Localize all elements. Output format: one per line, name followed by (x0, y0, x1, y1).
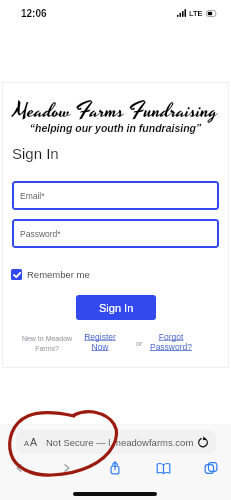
button[interactable]: Email* (12, 181, 219, 210)
staticText: 12:06 (21, 8, 47, 19)
staticText: Register Now (80, 332, 120, 352)
staticText: A (30, 436, 38, 448)
staticText: New to Meadow Farms? (16, 335, 78, 352)
button[interactable]: Back (6, 455, 32, 481)
staticText: Password* (20, 229, 61, 238)
button[interactable]: Forgot Password? (141, 332, 201, 352)
button[interactable]: Password* (12, 219, 219, 248)
staticText: A (24, 439, 30, 447)
button[interactable]: Bookmarks (150, 455, 176, 481)
button[interactable]: A (16, 430, 216, 454)
staticText: or (136, 340, 143, 348)
staticText: Meadow Farms Fundraising (2, 95, 229, 126)
staticText: Email* (20, 191, 45, 200)
button[interactable]: Sign In (76, 295, 156, 320)
staticText: Not Secure — l.meadowfarms.com (46, 437, 194, 448)
button[interactable]: Share (102, 455, 128, 481)
button[interactable]: Register Now (80, 332, 120, 352)
staticText: Remember me (27, 269, 90, 280)
button[interactable]: Tabs (198, 455, 224, 481)
staticText: Sign In (12, 145, 59, 162)
staticText: Sign In (99, 302, 134, 314)
staticText: “helping our youth in fundraising” (2, 122, 229, 134)
button[interactable]: Remember me (9, 267, 92, 282)
staticText: LTE (189, 9, 203, 17)
button[interactable]: Forward (54, 455, 80, 481)
staticText: Forgot Password? (141, 332, 201, 352)
